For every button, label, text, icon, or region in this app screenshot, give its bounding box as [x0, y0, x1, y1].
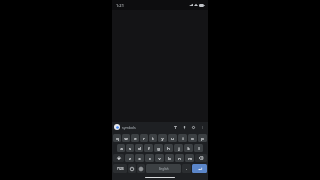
button[interactable]: Voice [181, 124, 187, 130]
staticText: m [188, 156, 192, 161]
staticText: English [159, 167, 169, 171]
button[interactable]: h [164, 144, 173, 152]
staticText: t [152, 136, 154, 141]
staticText: u [171, 136, 174, 141]
staticText: d [138, 146, 141, 151]
button[interactable]: Space [146, 164, 181, 173]
staticText: i [182, 136, 184, 141]
button[interactable]: a [117, 144, 125, 152]
button[interactable]: n [175, 154, 184, 162]
button[interactable]: Settings [190, 124, 196, 130]
button[interactable]: Backspace [195, 154, 207, 162]
button[interactable]: b [165, 154, 174, 162]
button[interactable]: e [131, 134, 139, 142]
button[interactable]: f [144, 144, 153, 152]
button[interactable]: k [184, 144, 193, 152]
staticText: z [129, 156, 131, 161]
button[interactable]: v [155, 154, 164, 162]
button[interactable]: i [178, 134, 187, 142]
button[interactable]: Emoji [128, 164, 136, 173]
button[interactable]: Enter [192, 164, 207, 173]
staticText: y [161, 136, 164, 141]
staticText: n [178, 156, 181, 161]
button[interactable]: l [194, 144, 203, 152]
staticText: g [157, 146, 160, 151]
button[interactable]: r [140, 134, 148, 142]
staticText: f [148, 146, 150, 151]
button[interactable]: ?123 [113, 164, 127, 173]
staticText: symbols [122, 125, 136, 130]
button[interactable]: j [174, 144, 183, 152]
staticText: l [198, 146, 200, 151]
staticText: v [158, 156, 161, 161]
button[interactable]: u [168, 134, 177, 142]
staticText: 1:21 [116, 3, 124, 8]
staticText: k [187, 146, 190, 151]
staticText: q [116, 136, 119, 141]
button[interactable]: x [135, 154, 144, 162]
button[interactable]: z [125, 154, 134, 162]
staticText: e [134, 136, 137, 141]
staticText: b [168, 156, 171, 161]
button[interactable]: Settings [137, 164, 145, 173]
button[interactable]: d [135, 144, 143, 152]
button[interactable]: Google [114, 124, 120, 130]
button[interactable]: q [113, 134, 121, 142]
button[interactable]: More options [199, 124, 205, 130]
staticText: . [186, 166, 188, 171]
button[interactable]: w [122, 134, 130, 142]
button[interactable]: m [185, 154, 194, 162]
staticText: c [149, 156, 151, 161]
staticText: h [167, 146, 170, 151]
button[interactable]: . [182, 164, 191, 173]
button[interactable]: g [154, 144, 163, 152]
button[interactable]: y [158, 134, 167, 142]
staticText: r [143, 136, 145, 141]
button[interactable]: c [145, 154, 154, 162]
staticText: w [124, 136, 128, 141]
button[interactable]: t [149, 134, 157, 142]
staticText: a [120, 146, 123, 151]
button[interactable]: o [188, 134, 197, 142]
staticText: j [178, 146, 180, 151]
button[interactable]: Shift [113, 154, 124, 162]
staticText: p [201, 136, 204, 141]
button[interactable]: s [126, 144, 134, 152]
staticText: ?123 [117, 167, 124, 171]
staticText: o [191, 136, 194, 141]
staticText: x [138, 156, 141, 161]
button[interactable]: p [198, 134, 207, 142]
button[interactable]: Translate [172, 124, 178, 130]
staticText: s [129, 146, 131, 151]
